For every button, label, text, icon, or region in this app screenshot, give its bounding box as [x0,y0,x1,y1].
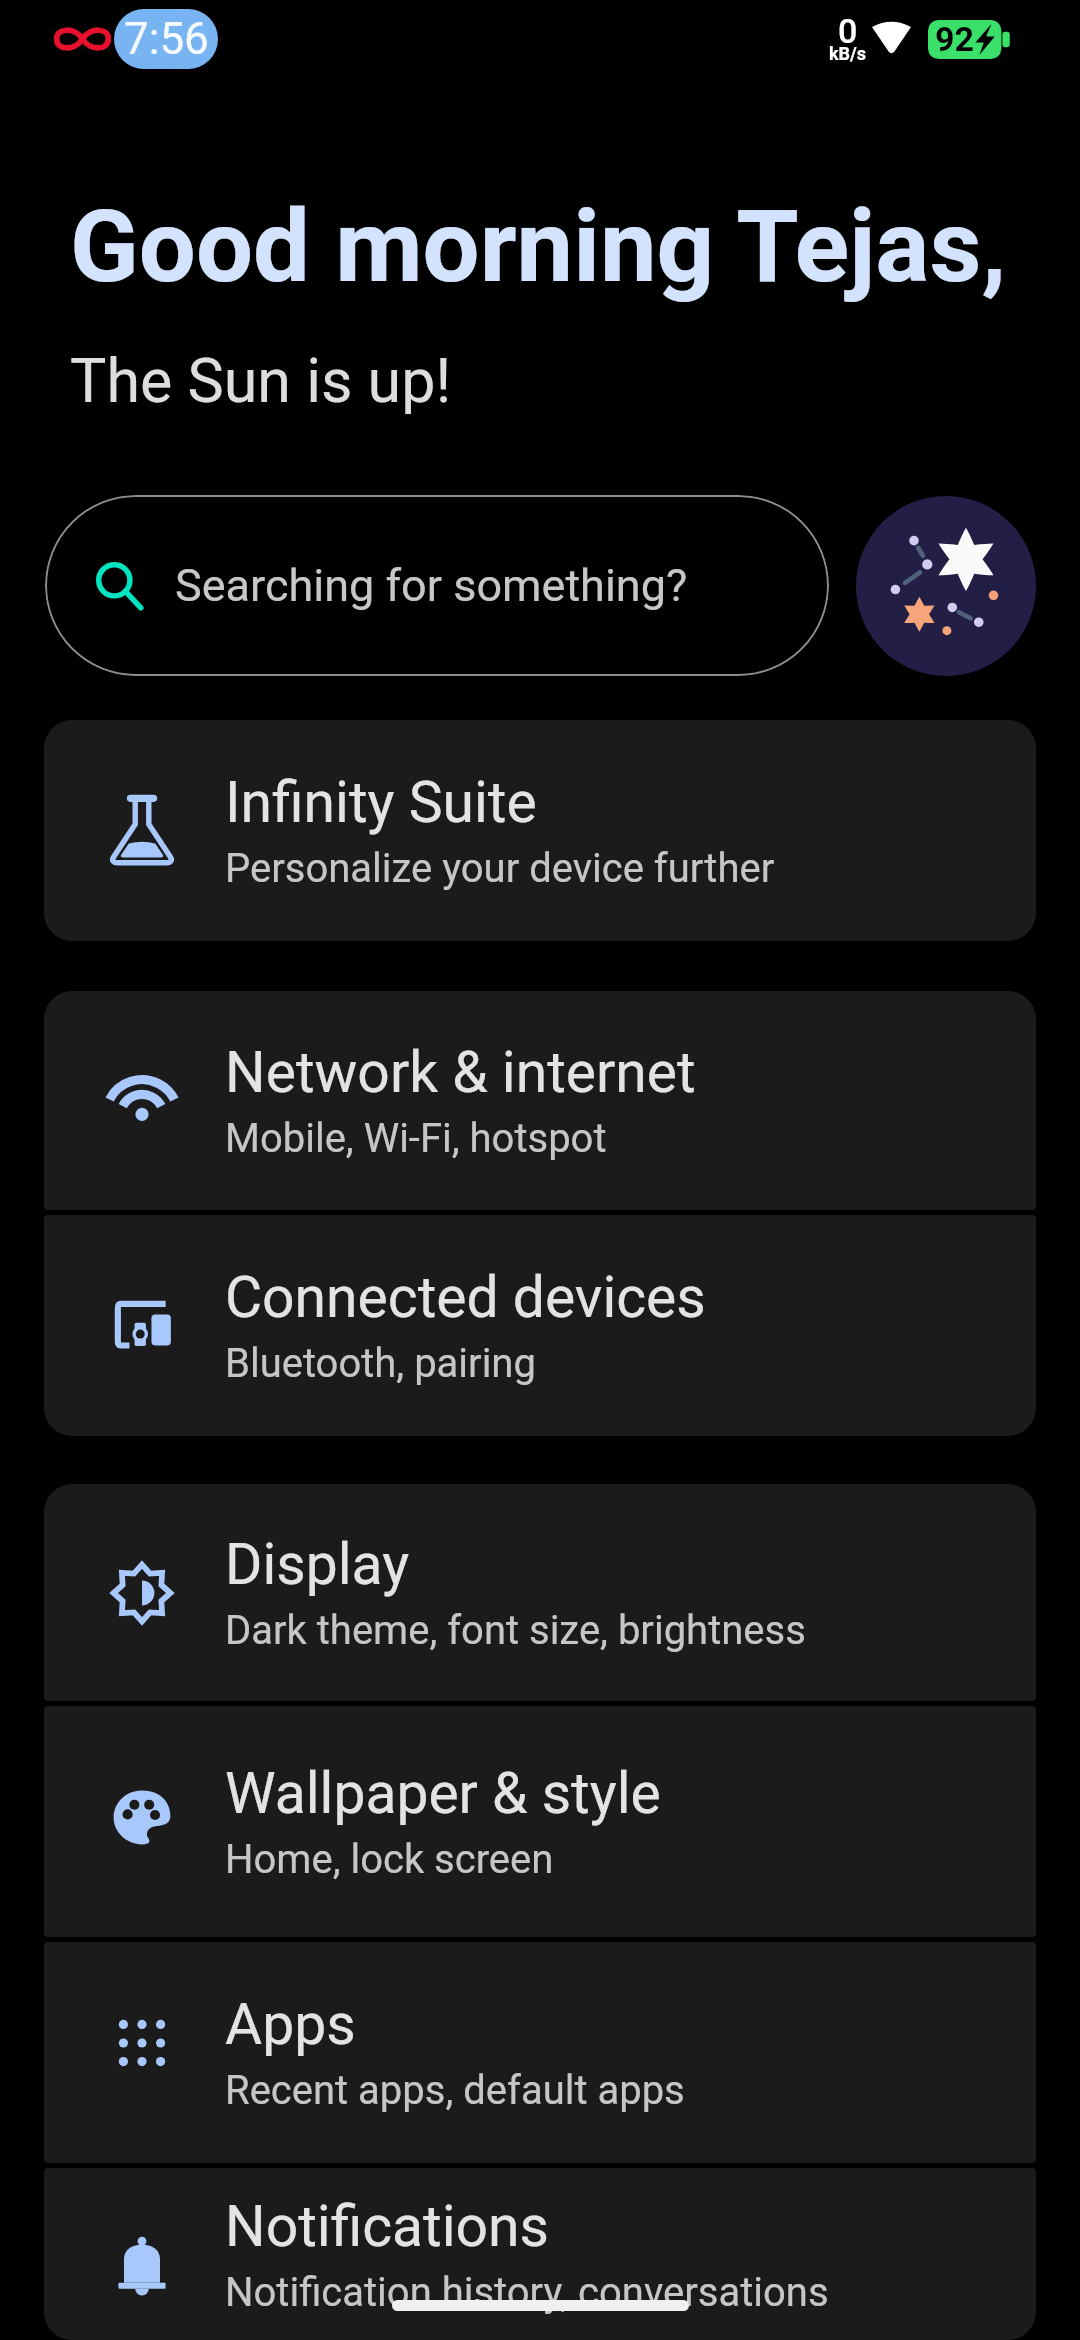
staticText: kB/s [829,43,867,64]
other: Infinity [54,25,111,53]
staticText: Display [225,1531,410,1598]
staticText: Home, lock screen [225,1836,554,1883]
staticText: Infinity Suite [225,769,537,836]
staticText: Bluetooth, pairing [225,1340,536,1387]
staticText: The Sun is up! [70,345,452,416]
button[interactable]: Connected devices [44,1215,1036,1436]
staticText: Searching for something? [175,559,688,612]
button[interactable]: Profile [856,496,1036,676]
staticText: 0 [838,11,858,51]
staticText: Recent apps, default apps [225,2067,685,2114]
staticText: Network & internet [225,1039,696,1106]
staticText: Notification history, conversations [225,2269,829,2316]
button[interactable]: Searching for something? [45,495,829,676]
staticText: Dark theme, font size, brightness [225,1607,806,1654]
staticText: Wallpaper & style [225,1760,661,1827]
button[interactable]: Notifications [44,2168,1036,2340]
button[interactable]: Wallpaper & style [44,1706,1036,1937]
staticText: Personalize your device further [225,845,775,892]
staticText: Mobile, Wi-Fi, hotspot [225,1115,607,1162]
staticText: 7:56 [124,13,209,65]
button[interactable]: Display [44,1484,1036,1701]
staticText: Apps [225,1991,356,2058]
button[interactable]: Infinity Suite [44,720,1036,941]
staticText: 92 [935,19,975,59]
staticText: Good morning Tejas, [70,187,1007,305]
staticText: Connected devices [225,1264,706,1331]
button[interactable]: Apps [44,1942,1036,2163]
other: Wi-Fi [872,20,911,55]
staticText: Notifications [225,2193,550,2260]
button[interactable]: Network & internet [44,991,1036,1210]
